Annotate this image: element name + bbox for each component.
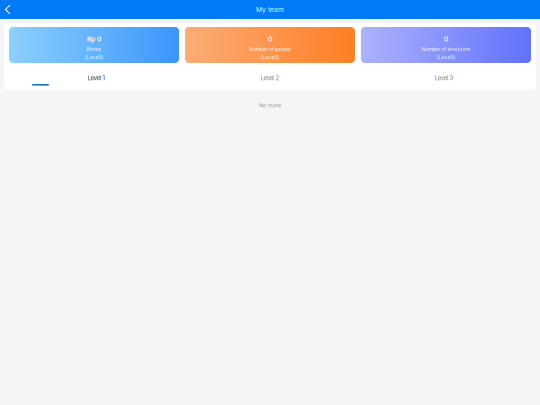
- staticText: My team: [256, 5, 284, 14]
- button[interactable]: Rp 0: [9, 27, 179, 63]
- staticText: (Level1): [436, 54, 455, 60]
- staticText: Bonus: [86, 46, 101, 52]
- staticText: No more: [259, 102, 281, 109]
- staticText: Number of people: [249, 46, 291, 52]
- staticText: Level 2: [260, 74, 279, 82]
- button[interactable]: Back: [0, 0, 17, 19]
- button[interactable]: 0: [185, 27, 355, 63]
- staticText: Level 1: [87, 74, 104, 82]
- staticText: Level 3: [434, 74, 453, 82]
- button[interactable]: Level 1: [9, 63, 183, 90]
- staticText: (Level1): [260, 54, 279, 60]
- button[interactable]: Level 3: [357, 63, 531, 90]
- staticText: 0: [444, 35, 448, 43]
- staticText: Number of investors: [421, 46, 470, 52]
- button[interactable]: Level 2: [183, 63, 357, 90]
- button[interactable]: 0: [361, 27, 531, 63]
- staticText: Rp 0: [87, 35, 101, 43]
- staticText: 0: [268, 35, 272, 43]
- staticText: (Level1): [84, 54, 103, 60]
